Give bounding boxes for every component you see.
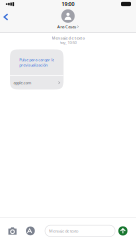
staticText: Ana Casas (57, 24, 76, 29)
staticText: Pulse para cargar la previsualización (19, 57, 54, 68)
staticText: hoy, 10:50 (59, 40, 76, 45)
button[interactable]: Pulse para cargar la previsualización (10, 49, 63, 89)
button[interactable]: Apps (24, 223, 37, 238)
button[interactable]: Camera (5, 224, 20, 238)
staticText: apple.com (13, 80, 31, 85)
staticText: Mensaje de texto (49, 228, 78, 233)
button[interactable]: Send (118, 226, 127, 235)
button[interactable]: Back (0, 10, 12, 24)
staticText: Mensaje de texto (51, 35, 84, 40)
staticText: 19:00 (61, 0, 74, 8)
